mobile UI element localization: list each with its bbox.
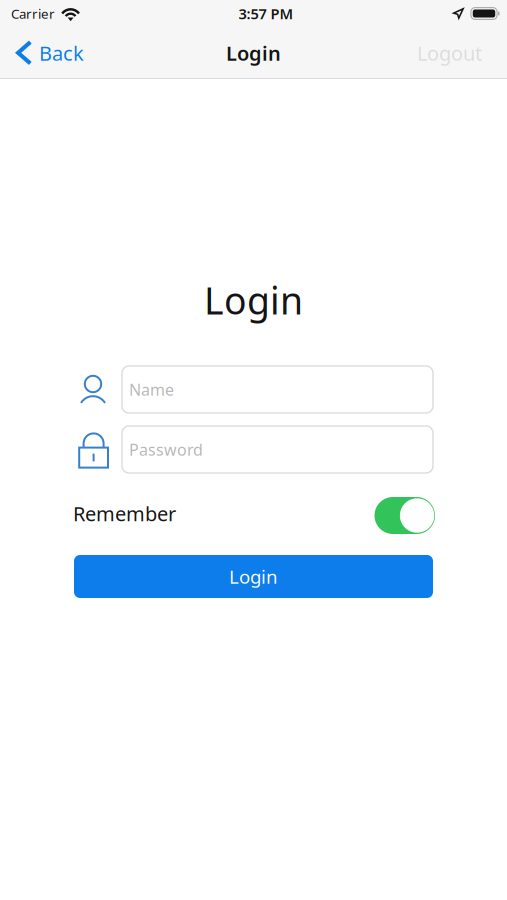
staticText: Password [129, 439, 203, 460]
button[interactable]: Remember [0, 497, 507, 534]
staticText: Login [226, 40, 281, 66]
staticText: Back [39, 40, 84, 66]
staticText: Logout [417, 40, 482, 66]
staticText: Name [129, 379, 174, 400]
button[interactable]: Name [74, 366, 433, 413]
staticText: Remember [73, 500, 176, 527]
staticText: 3:57 PM [238, 4, 293, 23]
button[interactable]: Back [0, 33, 84, 73]
staticText: Login [204, 275, 303, 325]
button[interactable]: Logout [417, 33, 507, 73]
staticText: Carrier [11, 5, 55, 22]
button[interactable]: Login [74, 555, 433, 598]
staticText: Login [229, 564, 278, 589]
button[interactable]: Password [74, 426, 433, 473]
